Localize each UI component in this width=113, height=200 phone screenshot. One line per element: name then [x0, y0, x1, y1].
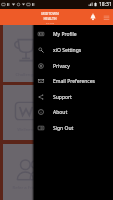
staticText: xiO Settings	[53, 47, 82, 54]
staticText: 18:31	[99, 1, 112, 8]
button[interactable]: Wellness	[0, 85, 113, 140]
button[interactable]: Refer a Friend	[0, 144, 113, 200]
button[interactable]: About	[34, 104, 113, 120]
button[interactable]: Support	[34, 89, 113, 105]
button[interactable]: Notifications	[86, 10, 100, 24]
staticText: My Profile	[53, 31, 77, 38]
button[interactable]: Challenges	[0, 25, 113, 82]
button[interactable]: Email Preferences	[34, 73, 113, 89]
button[interactable]: xiO Settings	[34, 42, 113, 58]
button[interactable]: My Profile	[34, 26, 113, 42]
staticText: Wellness	[17, 127, 35, 133]
staticText: Challenges	[15, 72, 38, 78]
staticText: Email Preferences	[53, 78, 95, 85]
button[interactable]: Open navigation menu	[100, 11, 113, 24]
staticText: Sign Out	[53, 125, 74, 132]
staticText: MIDTOWN	[41, 11, 59, 16]
button[interactable]: Sign Out	[34, 120, 113, 136]
staticText: About	[53, 109, 68, 116]
staticText: C L U B	[46, 21, 54, 24]
staticText: Privacy	[53, 63, 70, 70]
staticText: Refer a Friend	[12, 185, 41, 191]
staticText: HEALTH	[43, 16, 57, 21]
staticText: Support	[53, 94, 72, 101]
button[interactable]: Privacy	[34, 58, 113, 74]
